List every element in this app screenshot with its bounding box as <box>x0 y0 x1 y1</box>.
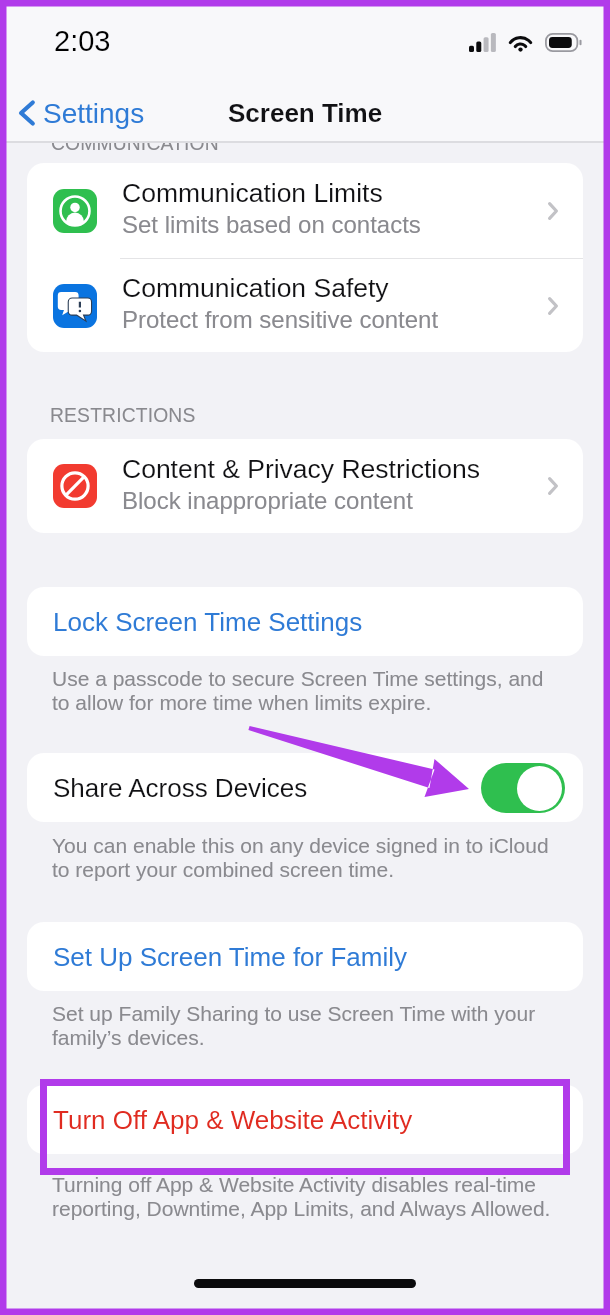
staticText: Protect from sensitive content <box>122 303 439 334</box>
button[interactable]: Share Across Devices <box>27 753 583 822</box>
staticText: Set up Family Sharing to use Screen Time… <box>52 1002 557 1050</box>
button[interactable]: Communication Limits <box>27 163 583 258</box>
staticText: Settings <box>43 98 145 129</box>
staticText: Content & Privacy Restrictions <box>122 454 480 484</box>
staticText: RESTRICTIONS <box>50 404 196 426</box>
button[interactable]: Set Up Screen Time for Family <box>27 922 583 991</box>
staticText: Lock Screen Time Settings <box>53 607 363 636</box>
staticText: You can enable this on any device signed… <box>52 834 557 882</box>
button[interactable]: Lock Screen Time Settings <box>27 587 583 656</box>
button[interactable]: Turn Off App & Website Activity <box>27 1085 583 1154</box>
staticText: Set Up Screen Time for Family <box>53 942 407 971</box>
staticText: Turning off App & Website Activity disab… <box>52 1173 557 1221</box>
staticText: Set limits based on contacts <box>122 208 421 239</box>
staticText: Screen Time <box>228 98 383 127</box>
button[interactable]: Communication Safety <box>27 259 583 352</box>
staticText: 2:03 <box>54 25 111 57</box>
staticText: Communication Limits <box>122 178 383 208</box>
staticText: Block inappropriate content <box>122 484 413 515</box>
button[interactable]: Content & Privacy Restrictions <box>27 439 583 533</box>
staticText: Share Across Devices <box>53 773 481 802</box>
staticText: Turn Off App & Website Activity <box>53 1105 413 1134</box>
staticText: Use a passcode to secure Screen Time set… <box>52 667 557 715</box>
staticText: COMMUNICATION <box>51 134 219 154</box>
button[interactable]: Settings <box>14 90 149 136</box>
staticText: Communication Safety <box>122 273 389 303</box>
